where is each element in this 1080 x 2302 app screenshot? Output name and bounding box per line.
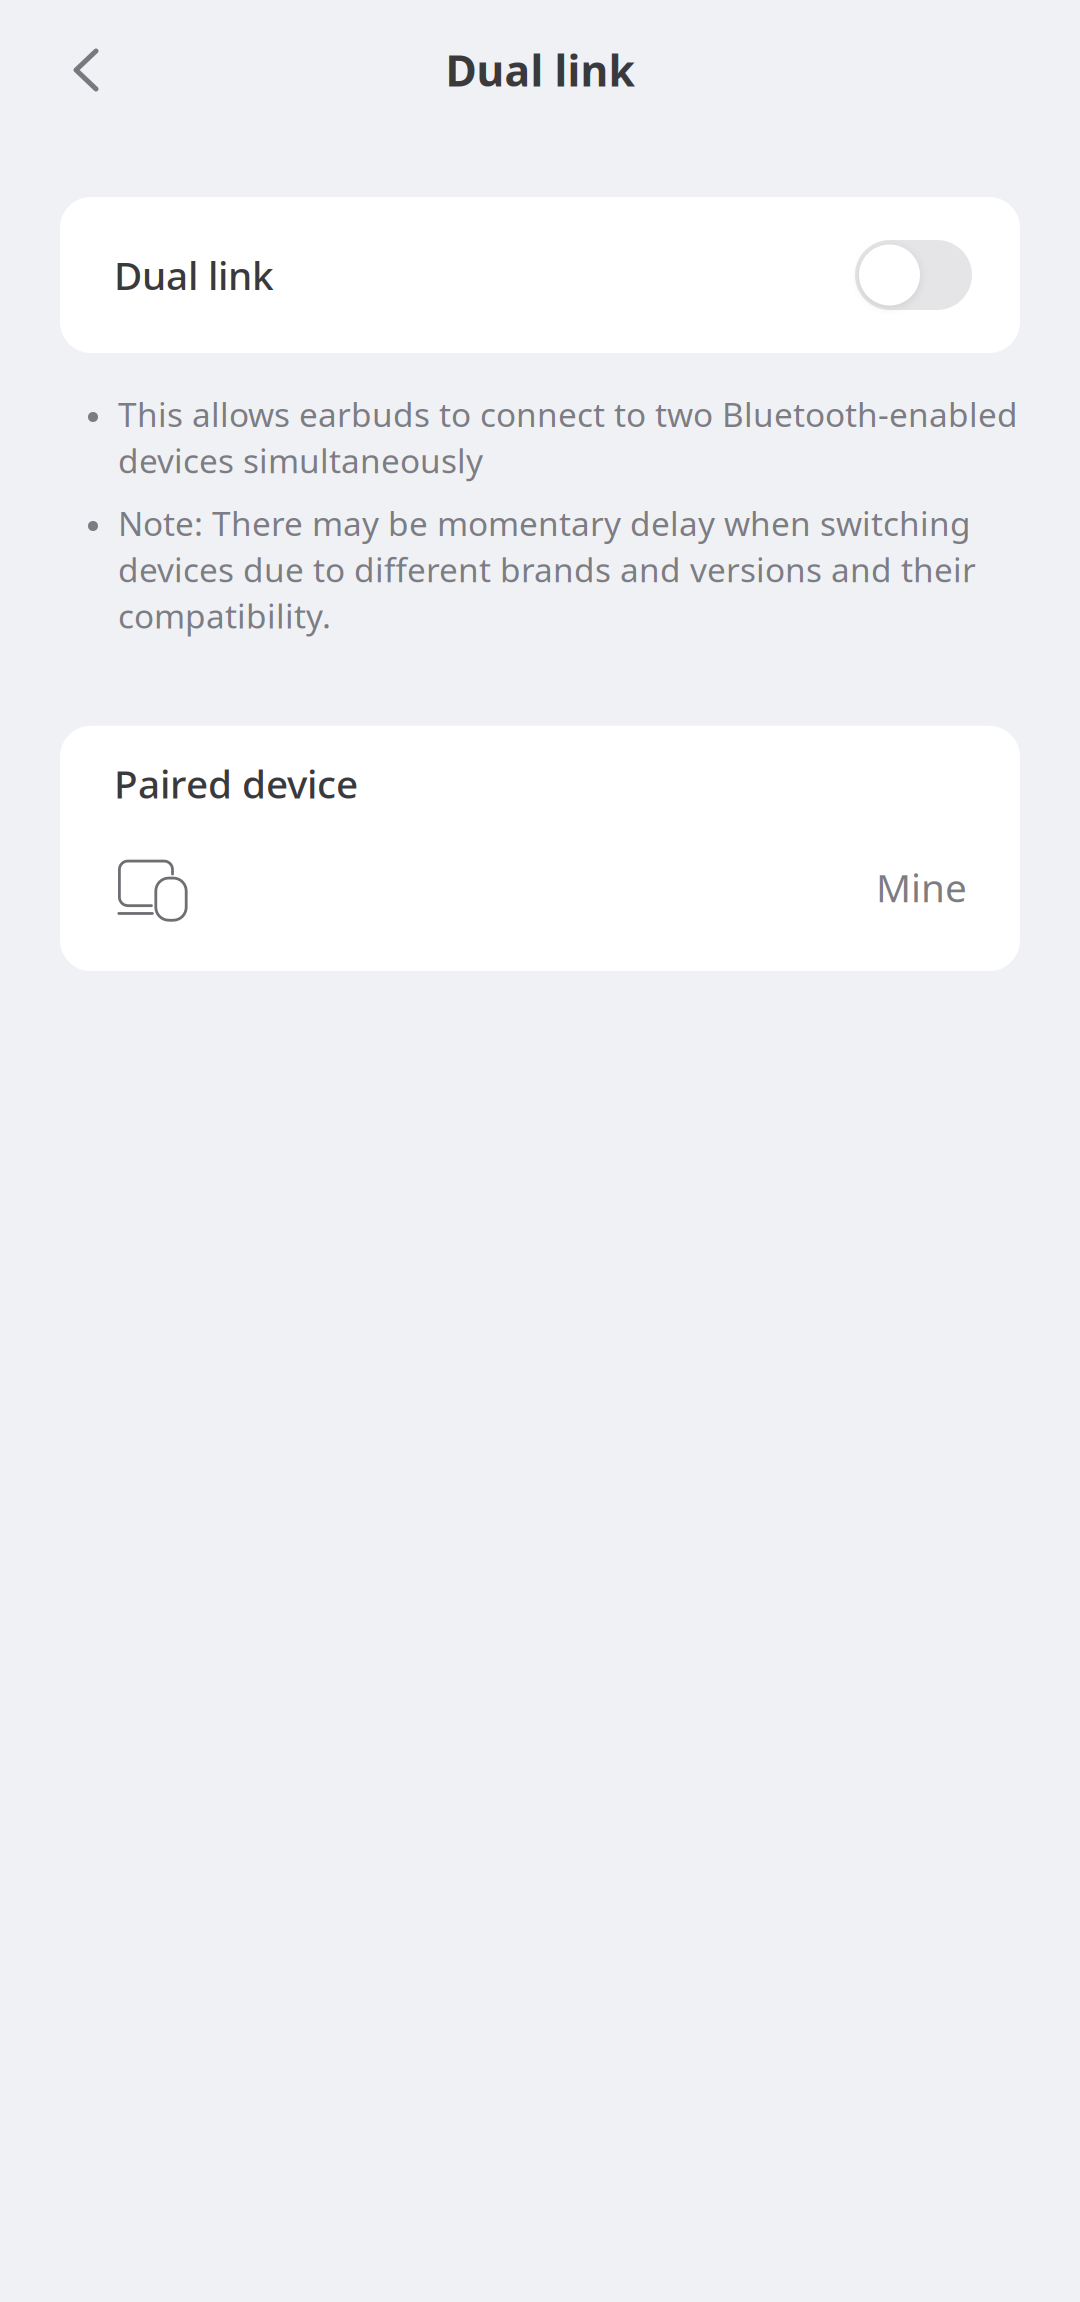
staticText: Paired device <box>114 758 358 809</box>
staticText: Mine <box>876 861 967 913</box>
staticText: Dual link <box>114 249 274 301</box>
button[interactable]: Back <box>38 22 134 118</box>
staticText: Note: There may be momentary delay when … <box>118 501 976 638</box>
button[interactable]: Dual link <box>60 197 1020 353</box>
button[interactable]: Mine <box>114 841 967 933</box>
staticText: Dual link <box>445 42 634 98</box>
staticText: This allows earbuds to connect to two Bl… <box>118 392 1018 482</box>
